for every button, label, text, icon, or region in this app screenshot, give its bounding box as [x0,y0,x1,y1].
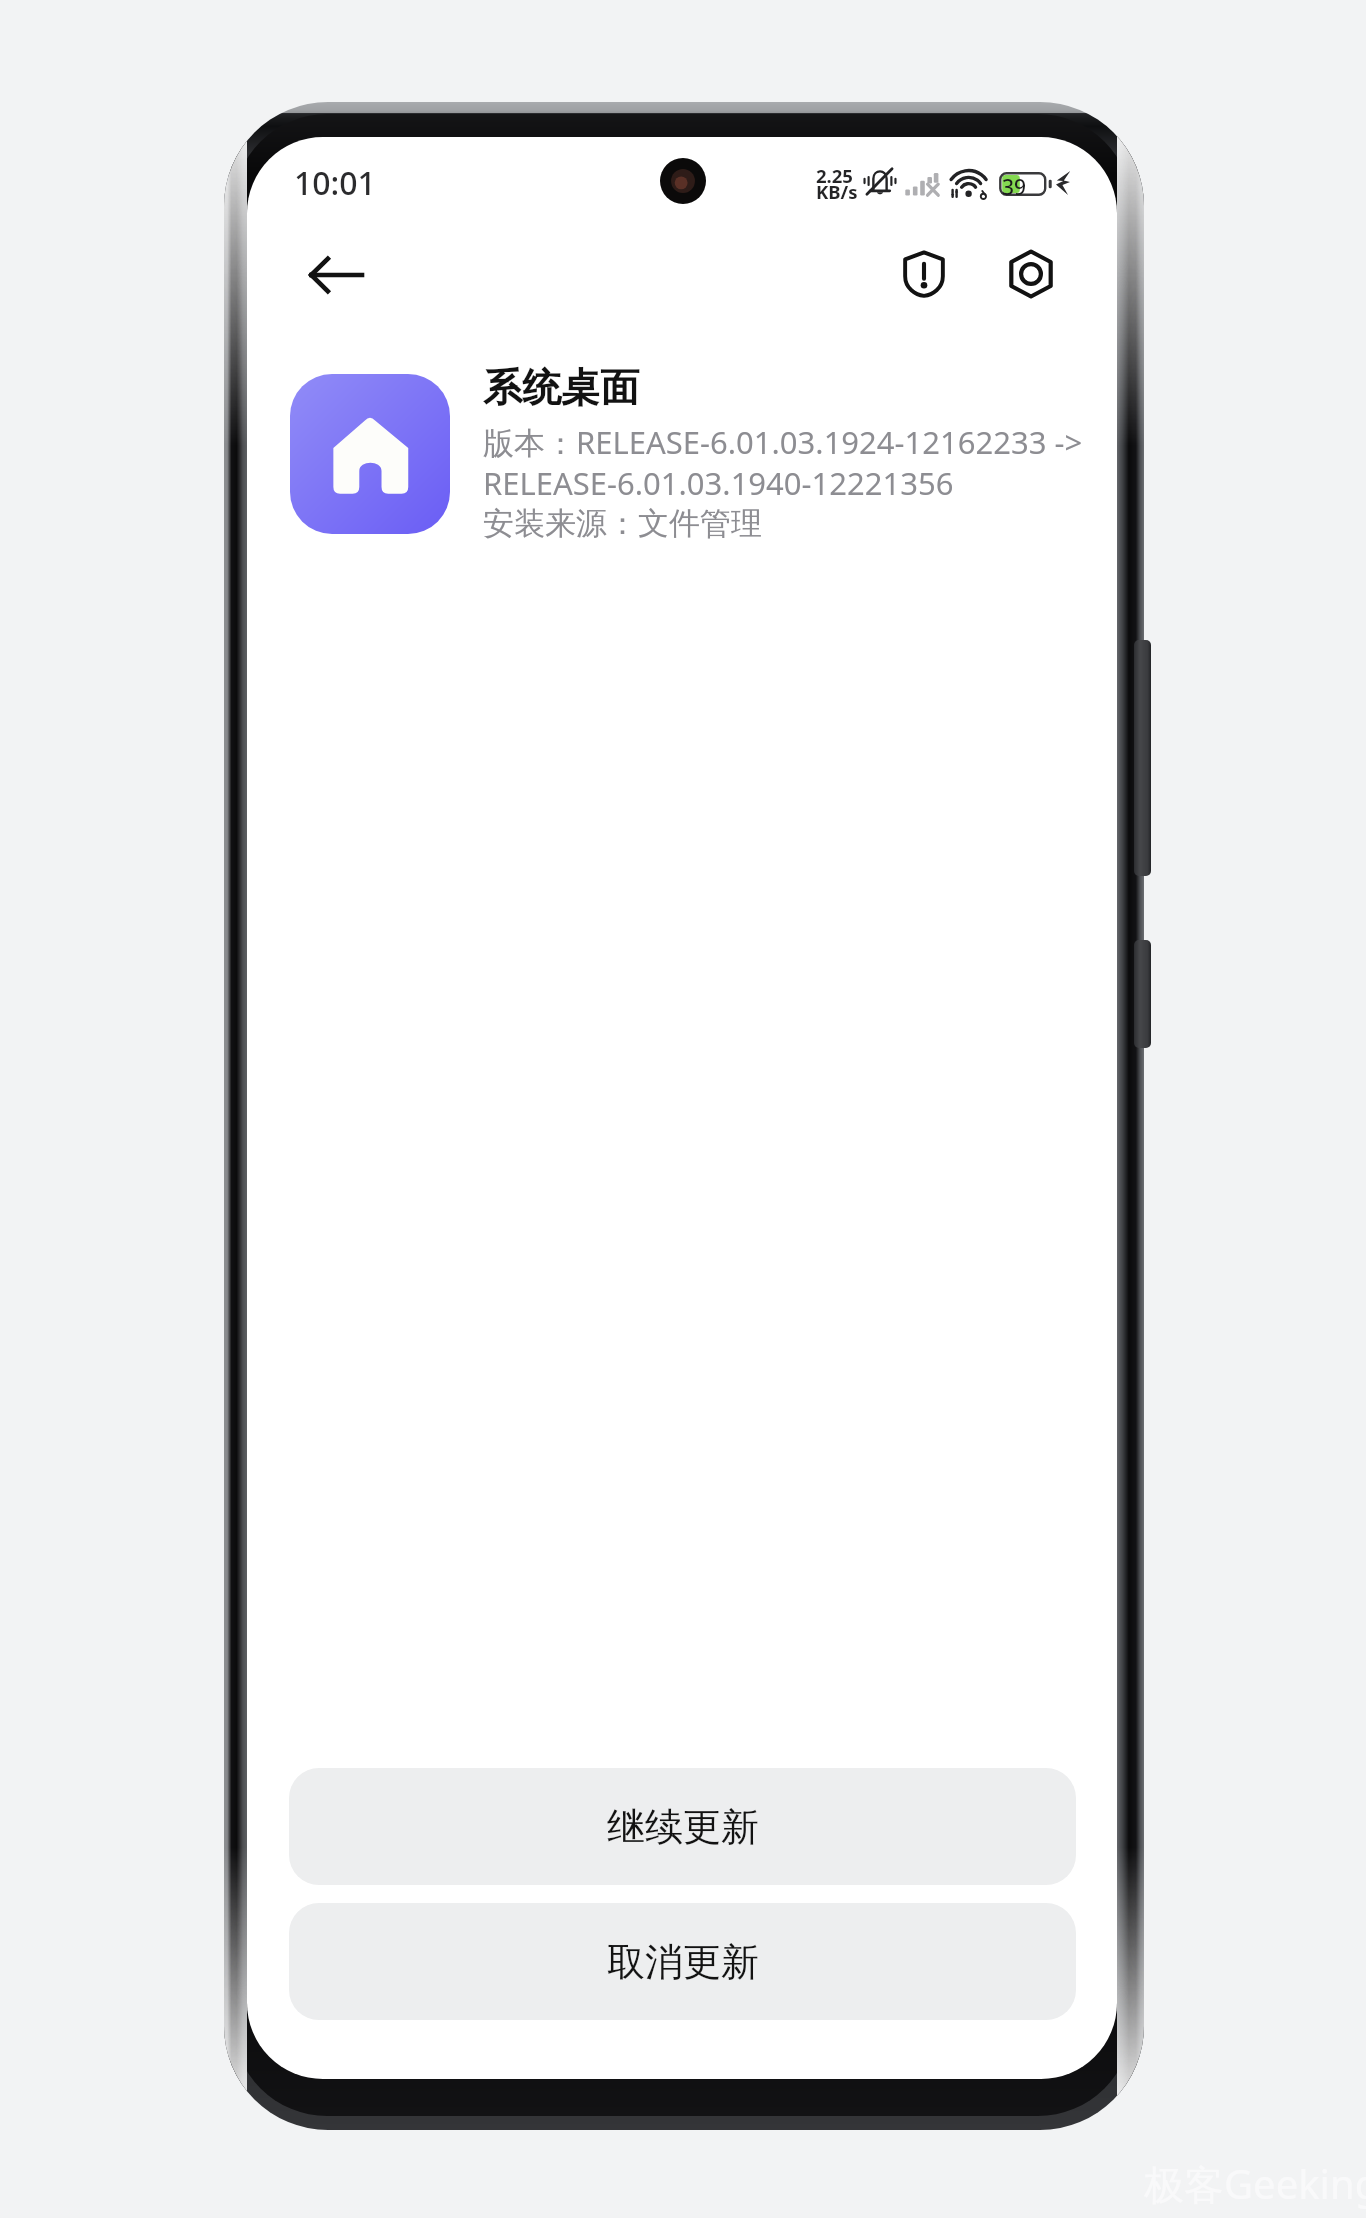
button[interactable]: Settings [987,230,1075,318]
staticText: 10:01 [294,161,376,205]
staticText: 版本：RELEASE-6.01.03.1924-12162233 -> RELE… [483,421,1083,543]
staticText: 取消更新 [607,1938,759,1986]
staticText: 继续更新 [607,1803,759,1851]
button[interactable]: Security warning [880,230,968,318]
staticText: 系统桌面 [483,363,639,412]
button[interactable]: 继续更新 [289,1768,1076,1885]
button[interactable]: 取消更新 [289,1903,1076,2020]
staticText: 39 [1002,173,1027,202]
button[interactable]: Back [290,230,380,320]
staticText: 2.25 KB/s [816,163,858,204]
